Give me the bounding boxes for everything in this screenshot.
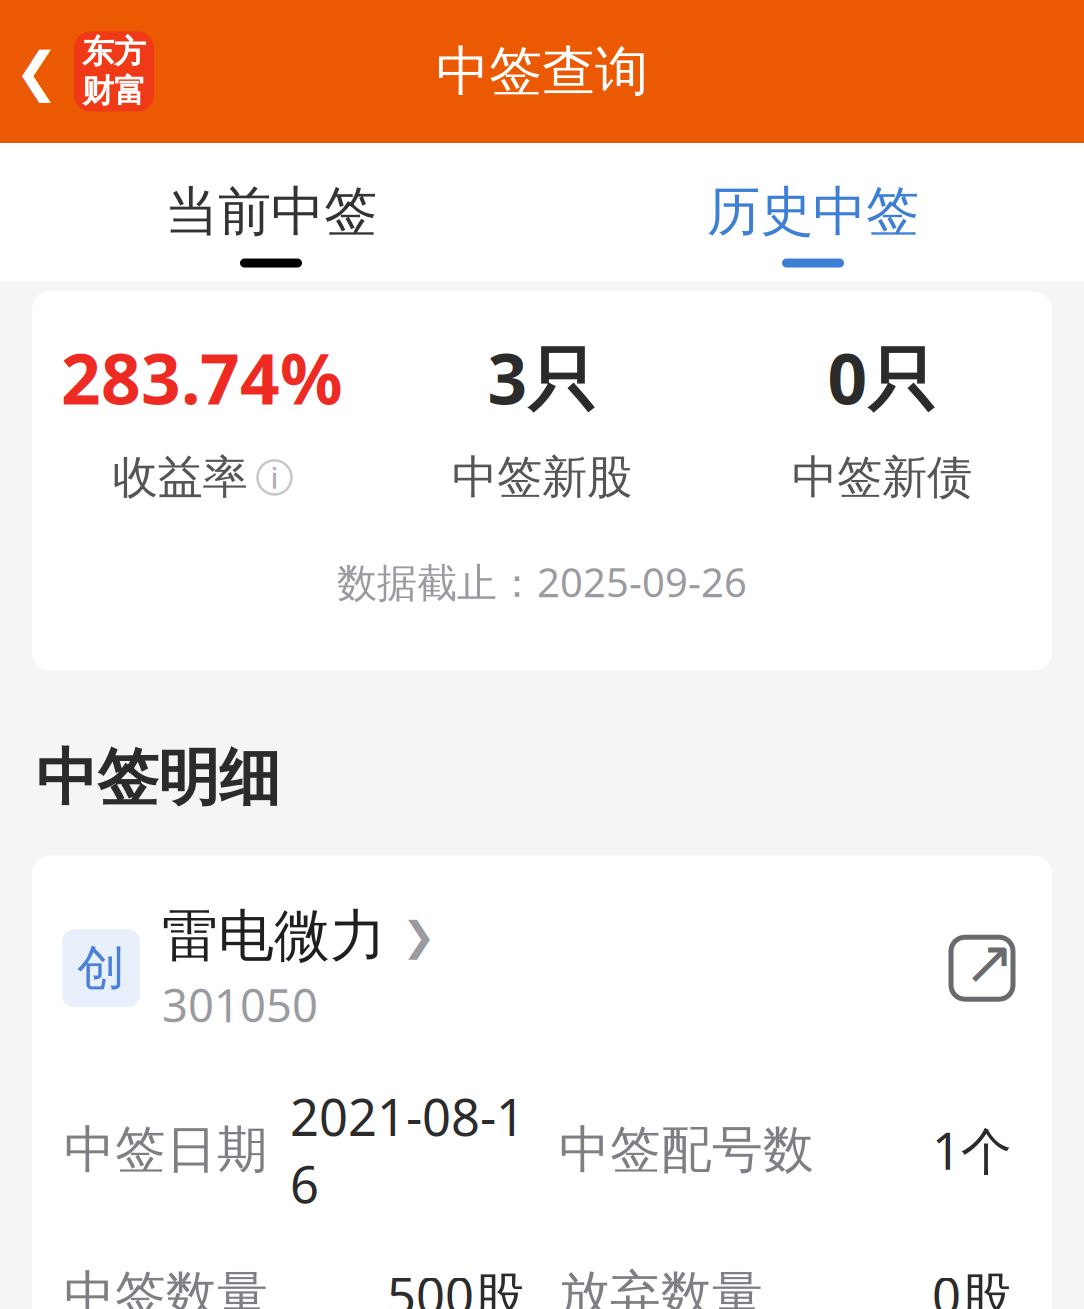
staticText: 中签新股 [452,450,632,505]
staticText: 3只 [487,331,596,424]
staticText: 放弃数量 [559,1264,763,1309]
staticText: ❯ [402,913,436,959]
staticText: 中签新债 [792,450,972,505]
staticText: 0只 [827,331,936,424]
button[interactable]: Open stock page [934,920,1030,1016]
staticText: ❮ [14,41,59,102]
staticText: 雷电微力 [162,902,386,970]
staticText: 数据截止：2025-09-26 [337,555,747,608]
staticText: 301050 [162,974,318,1035]
staticText: 中签查询 [436,39,648,104]
staticText: 500股 [387,1261,525,1309]
staticText: i [270,458,278,497]
staticText: 0股 [932,1261,1012,1309]
staticText: ↗ [963,927,1014,997]
button[interactable]: 创 [32,902,436,1035]
staticText: 中签配号数 [559,1119,814,1181]
staticText: 创 [77,939,125,998]
staticText: 当前中签 [165,179,377,244]
staticText: 2021-08-16 [290,1083,525,1217]
button[interactable]: Back [0,23,74,119]
staticText: 中签数量 [64,1264,268,1309]
staticText: 283.74% [61,331,343,424]
staticText: 中签日期 [64,1119,268,1181]
staticText: 历史中签 [707,179,919,244]
staticText: 收益率 [112,450,247,505]
staticText: 东方 [82,32,146,71]
button[interactable]: 历史中签 [542,143,1084,281]
staticText: 财富 [82,71,146,111]
staticText: 中签明细 [36,740,280,816]
button[interactable]: 当前中签 [0,143,542,281]
staticText: 1个 [932,1116,1012,1184]
